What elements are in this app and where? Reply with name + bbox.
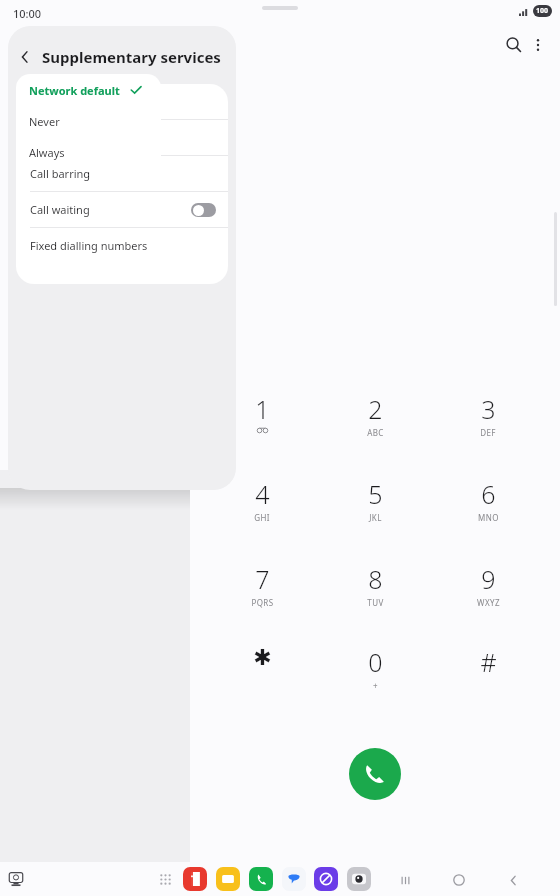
- staticText: PQRS: [251, 597, 274, 608]
- staticText: ABC: [367, 427, 384, 438]
- staticText: Call barring: [30, 166, 228, 181]
- button[interactable]: Camera: [347, 867, 371, 891]
- staticText: Fixed dialling numbers: [30, 238, 228, 253]
- button[interactable]: ✱: [224, 645, 300, 705]
- button[interactable]: 9: [450, 562, 526, 622]
- staticText: 9: [481, 562, 496, 596]
- button[interactable]: Search: [498, 29, 530, 61]
- staticText: 2: [368, 392, 383, 426]
- button[interactable]: #: [450, 645, 526, 705]
- button[interactable]: More options: [522, 29, 554, 61]
- staticText: Network default: [29, 83, 120, 98]
- staticText: 5: [368, 477, 383, 511]
- staticText: Supplementary services: [42, 47, 221, 67]
- button[interactable]: Call forwarding: [16, 120, 228, 155]
- button[interactable]: Fixed dialling numbers: [16, 228, 228, 263]
- staticText: 7: [255, 562, 270, 596]
- staticText: 6: [481, 477, 496, 511]
- button[interactable]: Home: [445, 866, 473, 894]
- staticText: TUV: [367, 597, 384, 608]
- button[interactable]: 6: [450, 477, 526, 537]
- staticText: 4: [255, 477, 270, 511]
- button[interactable]: My Files: [216, 867, 240, 891]
- staticText: #: [480, 645, 497, 679]
- button[interactable]: Messages: [282, 867, 306, 891]
- button[interactable]: 8: [337, 562, 413, 622]
- staticText: JKL: [369, 512, 382, 523]
- staticText: GHI: [254, 512, 270, 523]
- staticText: Always: [29, 145, 65, 160]
- button[interactable]: Phone: [249, 867, 273, 891]
- staticText: 0: [368, 645, 383, 679]
- button[interactable]: 2: [337, 392, 413, 452]
- staticText: 100: [536, 6, 549, 16]
- staticText: +: [373, 680, 378, 691]
- button[interactable]: Call barring: [16, 156, 228, 191]
- button[interactable]: Caller ID: [16, 84, 228, 119]
- button[interactable]: Call: [349, 748, 401, 800]
- button[interactable]: Network default: [16, 74, 161, 106]
- staticText: Never: [29, 114, 60, 129]
- staticText: MNO: [478, 512, 499, 523]
- button[interactable]: Call waiting: [16, 192, 228, 227]
- button[interactable]: Never: [16, 106, 161, 137]
- button[interactable]: 3: [450, 392, 526, 452]
- button[interactable]: Back: [499, 866, 527, 894]
- button[interactable]: 4: [224, 477, 300, 537]
- button[interactable]: Always: [16, 137, 161, 168]
- button[interactable]: 1: [224, 392, 300, 452]
- staticText: WXYZ: [477, 597, 500, 608]
- button[interactable]: Samsung Notes: [183, 867, 207, 891]
- button[interactable]: 0: [337, 645, 413, 705]
- staticText: Call waiting: [30, 202, 191, 217]
- staticText: Caller ID: [30, 94, 228, 109]
- button[interactable]: 5: [337, 477, 413, 537]
- button[interactable]: Apps: [153, 867, 177, 891]
- staticText: 8: [368, 562, 383, 596]
- staticText: 10:00: [13, 6, 42, 21]
- button[interactable]: Internet: [314, 867, 338, 891]
- button[interactable]: Recents: [391, 866, 419, 894]
- button[interactable]: Navigate up: [8, 39, 42, 75]
- staticText: 3: [481, 392, 496, 426]
- staticText: 1: [255, 392, 270, 426]
- staticText: ✱: [253, 645, 272, 671]
- staticText: DEF: [480, 427, 496, 438]
- button[interactable]: DeX: [2, 865, 30, 893]
- button[interactable]: 7: [224, 562, 300, 622]
